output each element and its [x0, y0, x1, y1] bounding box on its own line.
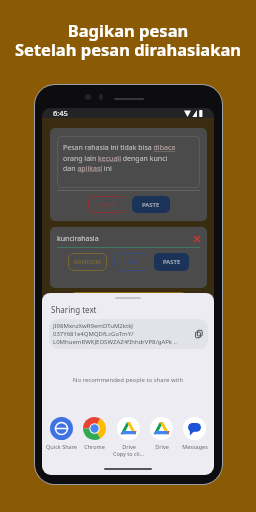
staticText: PASTE [163, 258, 181, 266]
staticText: Bagikan pesan Setelah pesan dirahasiakan [0, 19, 256, 61]
staticText: Drive [122, 443, 136, 450]
staticText: Pesan rahasia ini tidak bisa dibaca oran… [63, 143, 176, 173]
button[interactable]: jI98MxnzXwR9emDTuM2ktkJ 037Y681e4QMQDfLc… [49, 319, 208, 349]
staticText: Chrome [84, 443, 105, 450]
button[interactable]: Pesan rahasia ini tidak bisa dibaca oran… [57, 136, 200, 188]
button[interactable]: Messages [178, 417, 211, 450]
staticText: jI98MxnzXwR9emDTuM2ktkJ 037Y681e4QMQDfLc… [53, 322, 195, 346]
button[interactable]: CLEAR [88, 196, 126, 213]
button[interactable]: PASTE [132, 196, 170, 213]
button[interactable]: COPY [114, 253, 148, 271]
button[interactable]: Clear key [194, 236, 200, 242]
staticText: CLEAR [98, 201, 117, 209]
staticText: Copy to cli... [113, 450, 144, 457]
staticText: No recommended people to share with [42, 376, 214, 384]
staticText: RANDOM [74, 258, 101, 266]
staticText: Messages [182, 443, 208, 450]
staticText: Drive [155, 443, 169, 450]
button[interactable]: Drive [145, 417, 178, 450]
staticText: COPY [123, 258, 139, 266]
button[interactable]: RANDOM [68, 253, 107, 271]
button[interactable]: PASTE [154, 253, 189, 271]
staticText: Quick Share [46, 443, 77, 450]
staticText: 6:45 [53, 108, 68, 118]
button[interactable]: Drive [112, 417, 145, 457]
staticText: PASTE [142, 201, 160, 209]
button[interactable]: Quick Share [45, 417, 78, 450]
button[interactable]: Chrome [78, 417, 111, 450]
staticText: kuncirahasia [57, 234, 99, 244]
staticText: Sharing text [51, 304, 97, 315]
button[interactable]: Copy [195, 330, 203, 338]
